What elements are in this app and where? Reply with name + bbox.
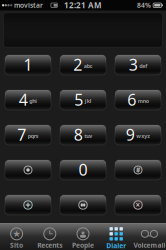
button[interactable]: 8 — [60, 125, 106, 145]
staticText: # — [136, 166, 140, 174]
staticText: 1 — [23, 54, 32, 75]
staticText: 12:21 AM — [64, 0, 102, 10]
button[interactable]: star — [5, 160, 51, 180]
button[interactable]: Delete — [115, 195, 161, 215]
staticText: People — [72, 241, 94, 250]
staticText: 0 — [78, 159, 87, 180]
staticText: mno — [138, 97, 149, 105]
button[interactable]: 0 — [60, 160, 106, 180]
staticText: Dialer — [106, 241, 126, 250]
button[interactable]: Dialer — [100, 223, 133, 250]
button[interactable]: Add contact — [5, 195, 51, 215]
button[interactable]: 9 — [115, 125, 161, 145]
staticText: 4 — [19, 89, 28, 110]
staticText: 9 — [126, 124, 135, 145]
staticText: abc — [84, 62, 93, 70]
staticText: movistar — [14, 1, 43, 10]
button[interactable]: 3 — [115, 55, 161, 75]
button[interactable]: 6 — [115, 90, 161, 110]
button[interactable]: pound — [115, 160, 161, 180]
button[interactable]: Voicemail — [133, 223, 166, 250]
staticText: wxyz — [136, 132, 150, 140]
button[interactable]: 7 — [5, 125, 51, 145]
staticText: Voicemail — [133, 241, 165, 250]
staticText: 84% — [137, 1, 151, 10]
staticText: 8 — [74, 124, 83, 145]
staticText: jkl — [85, 97, 92, 105]
button[interactable]: 2 — [60, 55, 106, 75]
staticText: tuv — [84, 132, 92, 140]
staticText: ★ — [13, 228, 21, 239]
button[interactable]: Call — [60, 195, 106, 215]
button[interactable]: 1 — [5, 55, 51, 75]
button[interactable]: 4 — [5, 90, 51, 110]
button[interactable]: ★ — [0, 223, 33, 250]
staticText: ghi — [29, 97, 37, 105]
staticText: pqrs — [28, 132, 39, 140]
staticText: 2 — [73, 54, 82, 75]
button[interactable]: Recents — [33, 223, 66, 250]
staticText: Recents — [37, 241, 62, 250]
button[interactable]: 5 — [60, 90, 106, 110]
staticText: Sito — [10, 241, 23, 250]
staticText: 6 — [127, 89, 136, 110]
staticText: 7 — [17, 124, 26, 145]
button[interactable]: People — [66, 223, 100, 250]
staticText: def — [139, 62, 147, 70]
staticText: 5 — [74, 89, 83, 110]
staticText: × — [135, 200, 140, 210]
staticText: 3 — [129, 54, 138, 75]
